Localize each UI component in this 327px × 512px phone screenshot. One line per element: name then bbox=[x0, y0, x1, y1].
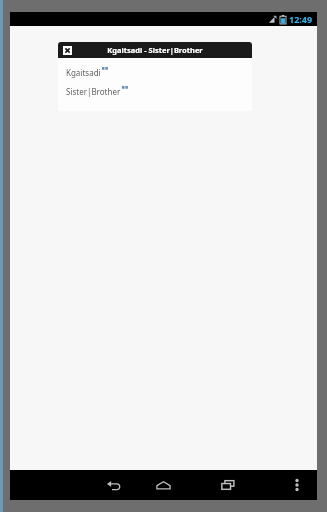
staticText: Kgaitsadi bbox=[66, 67, 101, 78]
staticText: Kgaitsadi - Sister|Brother bbox=[58, 45, 252, 55]
staticText: Sister|Brother bbox=[66, 86, 121, 97]
staticText: 12:49 bbox=[289, 13, 313, 25]
button[interactable]: Home bbox=[146, 470, 180, 500]
button[interactable]: More options bbox=[285, 473, 309, 497]
button[interactable]: Sister|Brother bbox=[66, 86, 244, 97]
button[interactable]: Back bbox=[96, 470, 130, 500]
button[interactable]: Recent apps bbox=[211, 470, 245, 500]
button[interactable]: Close bbox=[62, 45, 73, 56]
button[interactable]: Kgaitsadi bbox=[66, 67, 244, 78]
